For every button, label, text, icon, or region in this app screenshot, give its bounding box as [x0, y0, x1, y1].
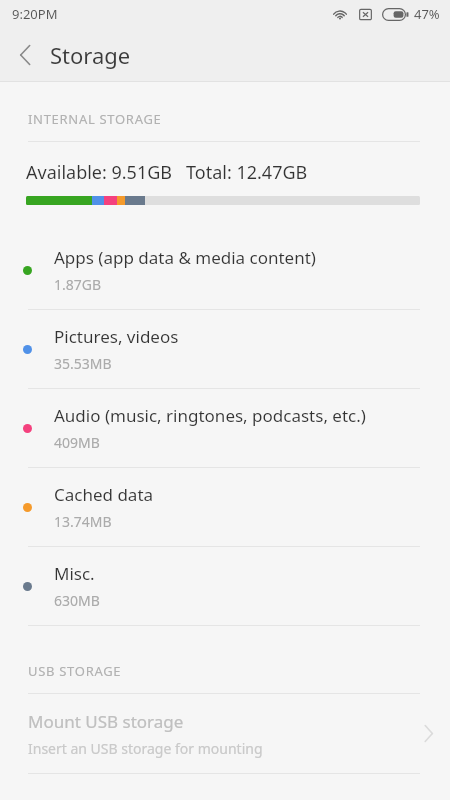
- button[interactable]: Apps (app data & media content): [0, 231, 450, 309]
- button[interactable]: Cached data: [0, 468, 450, 546]
- staticText: Insert an USB storage for mounting: [28, 739, 263, 758]
- staticText: 9:20PM: [12, 5, 58, 23]
- staticText: Storage: [50, 40, 131, 70]
- button[interactable]: Mount USB storage: [0, 694, 450, 773]
- staticText: Cached data: [54, 483, 154, 506]
- button[interactable]: Pictures, videos: [0, 310, 450, 388]
- staticText: 35.53MB: [54, 354, 112, 373]
- staticText: USB STORAGE: [28, 662, 122, 680]
- button[interactable]: Audio (music, ringtones, podcasts, etc.): [0, 389, 450, 467]
- staticText: Mount USB storage: [28, 710, 184, 733]
- staticText: INTERNAL STORAGE: [28, 110, 162, 128]
- staticText: 13.74MB: [54, 512, 112, 531]
- staticText: Apps (app data & media content): [54, 246, 316, 269]
- staticText: 47%: [414, 5, 440, 23]
- staticText: Audio (music, ringtones, podcasts, etc.): [54, 404, 366, 427]
- staticText: 409MB: [54, 433, 100, 452]
- staticText: 630MB: [54, 591, 100, 610]
- staticText: Misc.: [54, 562, 95, 585]
- button[interactable]: Back: [0, 30, 50, 80]
- staticText: Pictures, videos: [54, 325, 179, 348]
- staticText: Available: 9.51GB Total: 12.47GB: [26, 160, 308, 185]
- button[interactable]: Misc.: [0, 547, 450, 625]
- staticText: 1.87GB: [54, 275, 102, 294]
